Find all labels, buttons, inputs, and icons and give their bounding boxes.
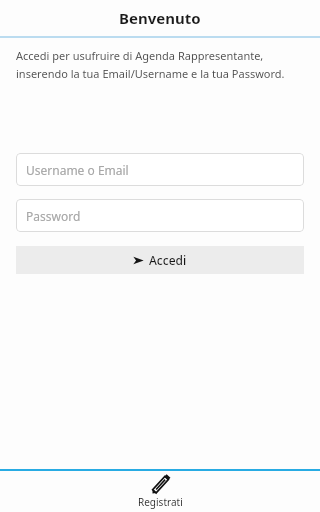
staticText: Username o Email (26, 162, 129, 178)
button[interactable]: Registrati (0, 471, 320, 512)
staticText: Accedi (149, 252, 187, 268)
staticText: Password (26, 208, 81, 224)
button[interactable]: Password (16, 199, 304, 232)
button[interactable]: Accedi (16, 246, 304, 274)
staticText: Registrati (138, 495, 183, 509)
staticText: Benvenuto (119, 8, 201, 28)
staticText: Accedi per usufruire di Agenda Rappresen… (16, 48, 304, 81)
button[interactable]: Username o Email (16, 153, 304, 186)
